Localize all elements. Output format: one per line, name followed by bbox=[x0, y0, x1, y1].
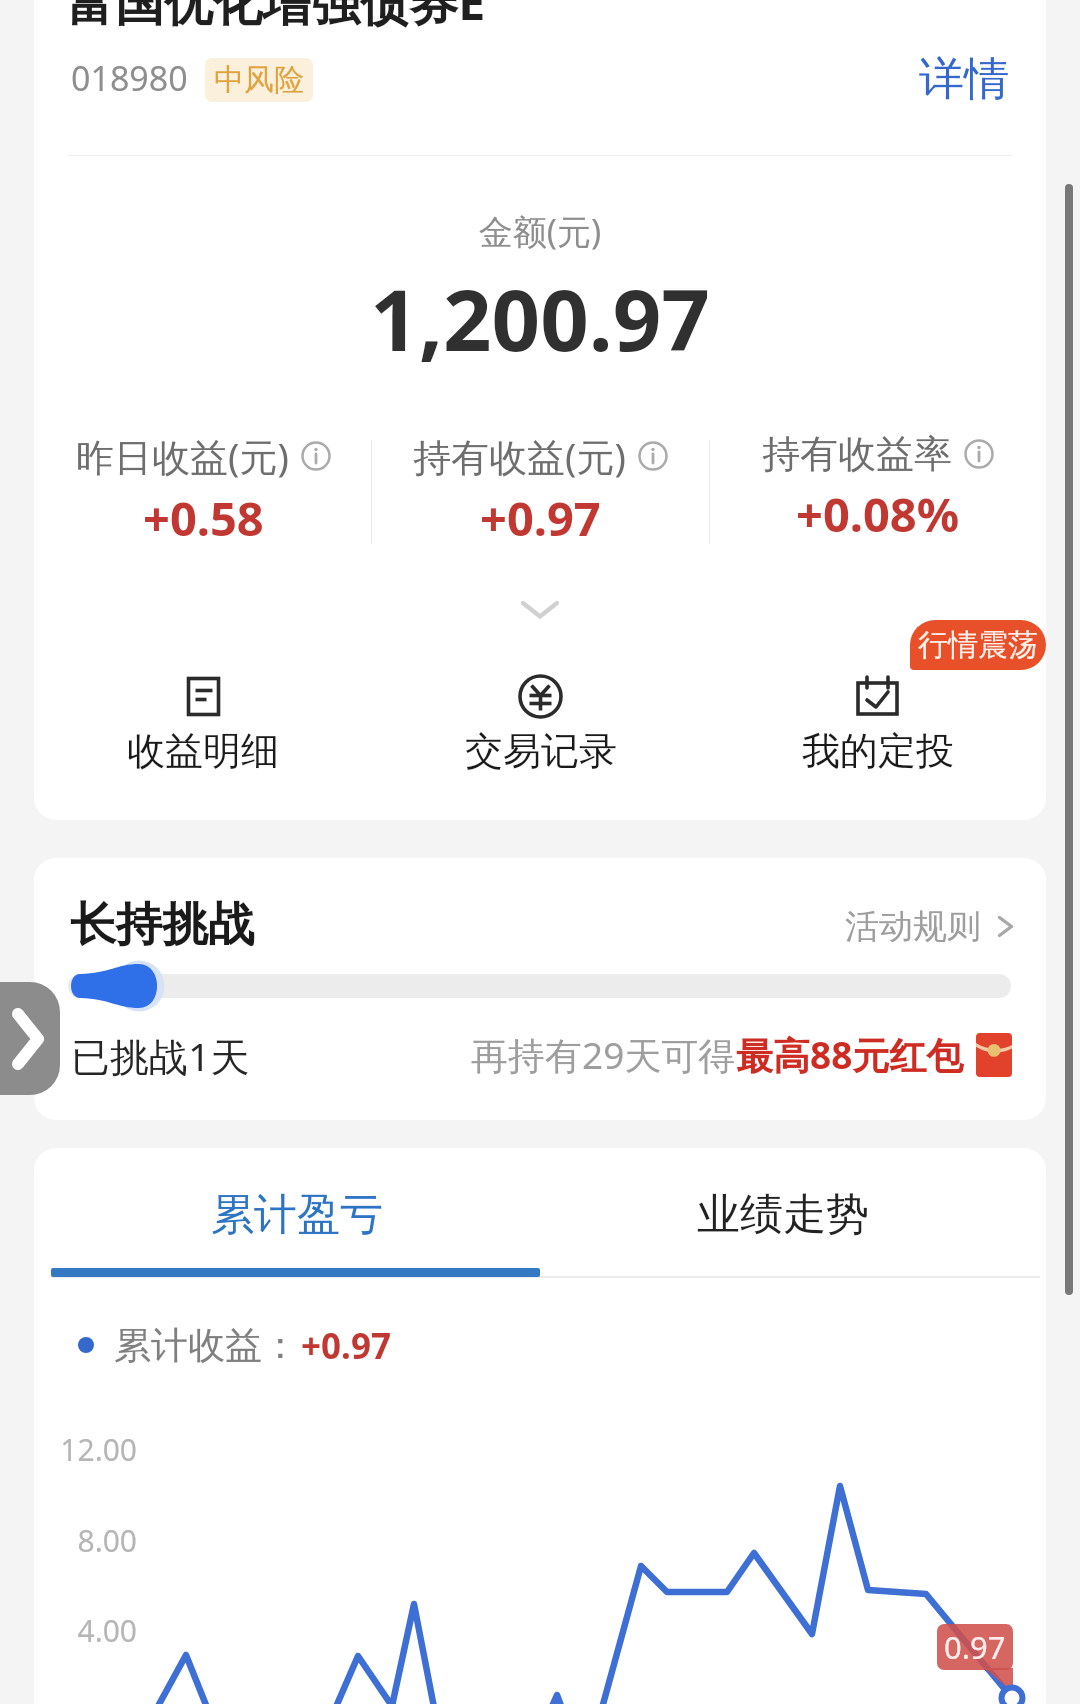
staticText: 行情震荡 bbox=[918, 626, 1038, 664]
button[interactable]: 详情 bbox=[909, 39, 1019, 119]
button[interactable]: 活动规则 bbox=[845, 901, 1013, 951]
staticText: +0.97 bbox=[301, 1322, 391, 1370]
button[interactable]: 展开侧边栏 bbox=[0, 982, 60, 1095]
staticText: 4.00 bbox=[0, 1610, 137, 1651]
staticText: 8.00 bbox=[0, 1520, 137, 1561]
staticText: 累计收益： bbox=[114, 1322, 299, 1369]
staticText: 0.97 bbox=[944, 1626, 1006, 1668]
staticText: 018980 bbox=[71, 55, 188, 101]
staticText: 业绩走势 bbox=[697, 1188, 869, 1242]
staticText: 我的定投 bbox=[802, 727, 954, 775]
staticText: 活动规则 bbox=[845, 905, 981, 948]
staticText: 最高88元红包 bbox=[736, 1029, 964, 1080]
staticText: 已挑战1天 bbox=[71, 1029, 250, 1082]
staticText: 长持挑战 bbox=[70, 896, 254, 954]
staticText: 12.00 bbox=[0, 1429, 137, 1470]
button[interactable]: 累计盈亏 bbox=[51, 1175, 543, 1255]
staticText: 金额(元) bbox=[0, 208, 1080, 254]
staticText: 再持有29天可得 bbox=[471, 1029, 736, 1080]
button[interactable]: 持有收益(元)说明 bbox=[638, 441, 668, 471]
staticText: 富国优化增强债券E bbox=[66, 0, 486, 35]
button[interactable]: 行情震荡 bbox=[910, 620, 1046, 670]
button[interactable]: 持有收益率说明 bbox=[964, 439, 994, 469]
staticText: 昨日收益(元) bbox=[76, 430, 289, 482]
button[interactable]: 我的定投 bbox=[709, 666, 1046, 786]
staticText: 收益明细 bbox=[127, 727, 279, 775]
button[interactable]: 昨日收益(元)说明 bbox=[301, 441, 331, 471]
button[interactable]: 展开更多 bbox=[466, 580, 614, 640]
staticText: +0.97 bbox=[480, 486, 601, 550]
staticText: 累计盈亏 bbox=[211, 1188, 383, 1242]
button[interactable]: 收益明细 bbox=[34, 666, 372, 786]
staticText: 详情 bbox=[919, 51, 1009, 108]
button[interactable]: 交易记录 bbox=[372, 666, 709, 786]
staticText: +0.08% bbox=[796, 482, 960, 546]
button[interactable]: 业绩走势 bbox=[543, 1175, 1023, 1255]
staticText: +0.58 bbox=[143, 486, 264, 550]
staticText: 1,200.97 bbox=[0, 260, 1080, 376]
staticText: 持有收益率 bbox=[762, 430, 952, 478]
staticText: 持有收益(元) bbox=[413, 430, 626, 482]
staticText: 交易记录 bbox=[465, 727, 617, 775]
staticText: 中风险 bbox=[214, 61, 304, 99]
